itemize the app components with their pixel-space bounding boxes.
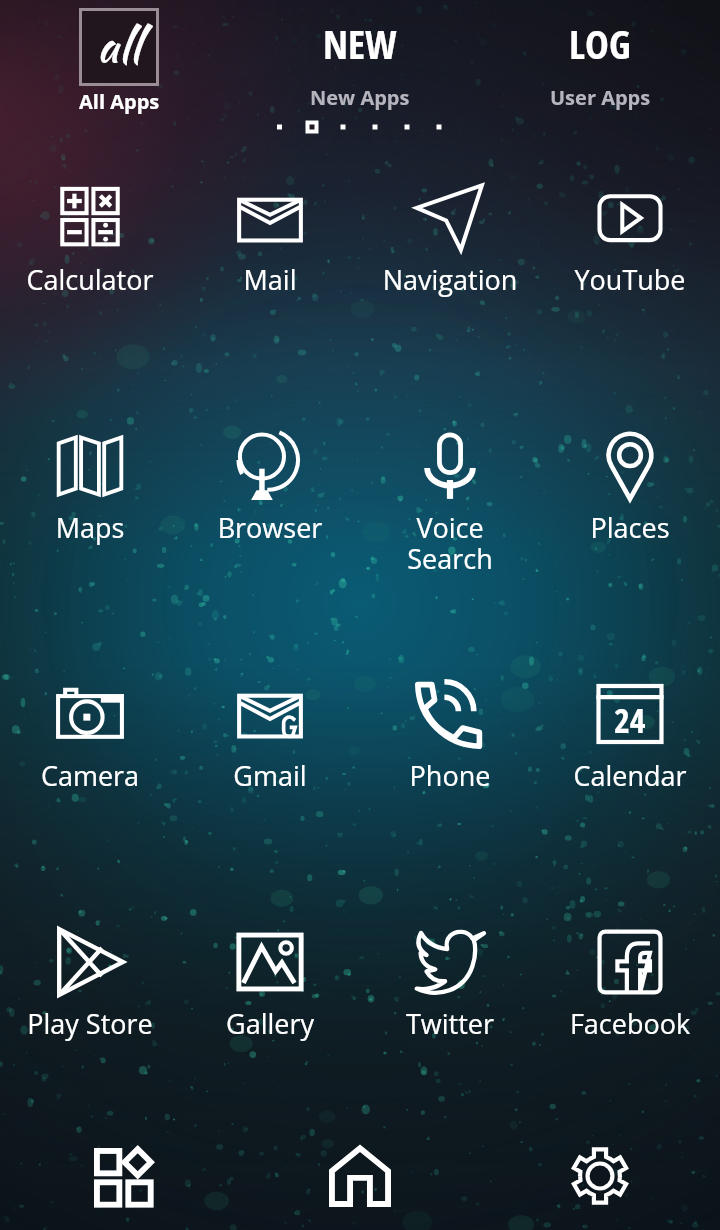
staticText: Maps: [0, 509, 180, 546]
button[interactable]: Home: [240, 1122, 480, 1230]
staticText: Gallery: [180, 1005, 360, 1042]
staticText: Play Store: [0, 1005, 180, 1042]
button[interactable]: Navigation: [360, 151, 540, 399]
staticText: Facebook: [540, 1005, 720, 1042]
staticText: LOG: [569, 16, 631, 70]
button[interactable]: 24: [540, 647, 720, 895]
button[interactable]: YouTube: [540, 151, 720, 399]
staticText: Mail: [180, 261, 360, 298]
button[interactable]: Places: [540, 399, 720, 647]
button[interactable]: Gmail: [180, 647, 360, 895]
staticText: All Apps: [79, 88, 160, 115]
button[interactable]: Facebook: [540, 895, 720, 1143]
staticText: User Apps: [550, 84, 651, 111]
staticText: Camera: [0, 757, 180, 794]
staticText: Gmail: [180, 757, 360, 794]
staticText: Calculator: [0, 261, 180, 298]
button[interactable]: Browser: [180, 399, 360, 647]
button[interactable]: All apps: [0, 1122, 240, 1230]
button[interactable]: Camera: [0, 647, 180, 895]
staticText: Voice Search: [395, 509, 505, 577]
staticText: New Apps: [310, 84, 410, 111]
button[interactable]: Phone: [360, 647, 540, 895]
button[interactable]: Twitter: [360, 895, 540, 1143]
staticText: all: [97, 12, 141, 79]
button[interactable]: Maps: [0, 399, 180, 647]
staticText: Browser: [180, 509, 360, 546]
button[interactable]: Mail: [180, 151, 360, 399]
staticText: NEW: [323, 16, 397, 70]
staticText: Navigation: [360, 261, 540, 298]
staticText: Twitter: [360, 1005, 540, 1042]
button[interactable]: LOG: [510, 16, 690, 111]
button[interactable]: Calculator: [0, 151, 180, 399]
staticText: Calendar: [540, 757, 720, 794]
staticText: Phone: [360, 757, 540, 794]
staticText: 24: [614, 697, 646, 743]
button[interactable]: Settings: [480, 1122, 720, 1230]
staticText: YouTube: [540, 261, 720, 298]
button[interactable]: Gallery: [180, 895, 360, 1143]
button[interactable]: NEW: [270, 16, 450, 111]
button[interactable]: all: [59, 8, 179, 115]
button[interactable]: Play Store: [0, 895, 180, 1143]
staticText: Places: [540, 509, 720, 546]
button[interactable]: Voice Search: [360, 399, 540, 647]
